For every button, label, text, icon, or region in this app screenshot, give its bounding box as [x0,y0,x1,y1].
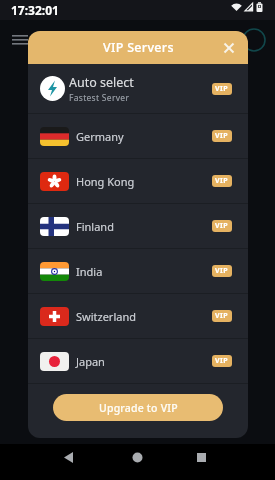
staticText: VIP [215,356,229,366]
staticText: Auto select [69,74,134,91]
staticText: India [76,264,103,279]
staticText: Japan [76,354,105,369]
staticText: VIP Servers [103,39,174,56]
staticText: VIP [215,311,229,321]
staticText: Fastest Server [69,92,130,104]
staticText: Finland [76,219,114,234]
staticText: VIP [215,221,229,231]
staticText: Upgrade to VIP [99,401,178,415]
staticText: VIP [215,266,229,276]
staticText: VIP [215,176,229,186]
staticText: VIP [215,84,229,94]
staticText: Switzerland [76,309,136,324]
staticText: Germany [76,129,124,144]
staticText: 17:32:01 [11,2,59,18]
staticText: VIP [215,131,229,141]
staticText: Hong Kong [76,174,135,189]
